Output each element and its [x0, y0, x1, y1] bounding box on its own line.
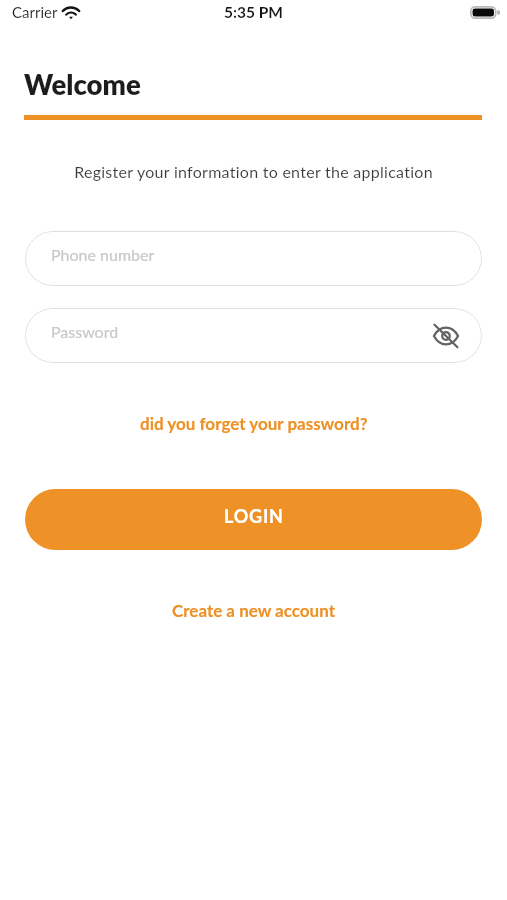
staticText: Carrier [12, 3, 58, 21]
button[interactable]: Create a new account [162, 595, 345, 625]
button[interactable]: Show password [428, 318, 464, 354]
staticText: Phone number [51, 245, 155, 264]
button[interactable]: Phone number [25, 231, 482, 286]
staticText: LOGIN [224, 505, 284, 527]
staticText: 5:35 PM [224, 3, 283, 22]
staticText: Welcome [24, 68, 141, 101]
button[interactable]: did you forget your password? [130, 408, 378, 438]
staticText: Password [51, 322, 119, 341]
other: Battery full [470, 6, 500, 19]
button[interactable]: LOGIN [25, 489, 482, 550]
button[interactable]: Password [25, 308, 482, 363]
other: Wi-Fi [61, 5, 81, 20]
staticText: Register your information to enter the a… [74, 162, 433, 181]
